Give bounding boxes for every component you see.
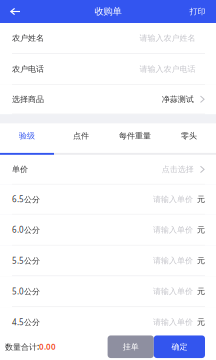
staticText: 请输入单价: [153, 194, 193, 204]
staticText: 6.0公分: [12, 224, 40, 235]
staticText: 请输入单价: [153, 286, 193, 296]
button[interactable]: 农户电话: [0, 54, 216, 85]
staticText: 挂单: [123, 342, 139, 352]
button[interactable]: 点件: [54, 124, 108, 155]
staticText: 农户电话: [12, 64, 44, 74]
staticText: 每件重量: [119, 131, 151, 141]
staticText: 元: [197, 256, 205, 265]
staticText: 点击选择: [162, 164, 194, 174]
button[interactable]: 农户姓名: [0, 23, 216, 54]
button[interactable]: 确定: [154, 335, 205, 358]
button[interactable]: 打印: [179, 0, 216, 23]
button[interactable]: 5.0公分: [0, 276, 216, 307]
staticText: 5.0公分: [12, 286, 40, 297]
button[interactable]: 6.5公分: [0, 185, 216, 215]
button[interactable]: 验级: [0, 124, 54, 155]
staticText: 净蒜测试: [162, 94, 194, 104]
staticText: 数量合计:: [5, 341, 39, 352]
staticText: 请输入农户姓名: [140, 33, 196, 43]
staticText: 确定: [171, 342, 187, 352]
staticText: 元: [197, 317, 205, 327]
staticText: 请输入农户电话: [140, 64, 196, 74]
staticText: 验级: [19, 131, 35, 141]
button[interactable]: 零头: [162, 124, 216, 155]
staticText: 元: [197, 225, 205, 235]
button[interactable]: Back: [0, 0, 30, 23]
staticText: 请输入单价: [153, 225, 193, 235]
staticText: 打印: [189, 7, 205, 16]
staticText: 点件: [73, 131, 89, 141]
staticText: 元: [197, 194, 205, 204]
staticText: 0.00: [39, 341, 56, 352]
staticText: 请输入单价: [153, 317, 193, 327]
button[interactable]: 4.5公分: [0, 307, 216, 338]
staticText: 请输入单价: [153, 256, 193, 265]
button[interactable]: 每件重量: [108, 124, 162, 155]
button[interactable]: 6.0公分: [0, 215, 216, 246]
staticText: 元: [197, 286, 205, 296]
button[interactable]: 5.5公分: [0, 246, 216, 276]
button[interactable]: 单价: [0, 155, 216, 185]
staticText: 农户姓名: [12, 33, 44, 43]
staticText: 4.5公分: [12, 317, 40, 327]
staticText: 6.5公分: [12, 194, 40, 204]
staticText: 收购单: [94, 6, 121, 17]
staticText: 5.5公分: [12, 255, 40, 266]
button[interactable]: 挂单: [108, 335, 154, 358]
staticText: 选择商品: [12, 94, 44, 104]
staticText: 单价: [12, 164, 28, 174]
button[interactable]: 选择商品: [0, 85, 216, 114]
staticText: 零头: [181, 131, 197, 141]
